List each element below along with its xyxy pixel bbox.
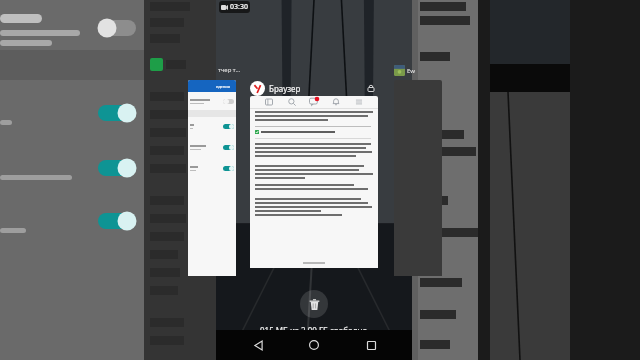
other: Yandex Browser <box>250 81 265 96</box>
staticText: едения <box>216 84 231 89</box>
button[interactable]: Lock task <box>364 81 378 95</box>
button[interactable]: Notifications <box>331 97 341 107</box>
button[interactable]: Feed <box>264 97 274 107</box>
button[interactable]: Feed <box>250 96 378 268</box>
staticText: 915 МБ из 2,00 ГБ свободно <box>260 325 368 336</box>
staticText: Ew <box>407 67 416 75</box>
button[interactable]: Menu <box>354 97 364 107</box>
button[interactable]: Back <box>243 330 273 360</box>
staticText: Браузер <box>269 83 301 94</box>
button[interactable]: Home <box>299 330 329 360</box>
staticText: тчер т… <box>218 66 241 74</box>
button[interactable]: Messages <box>309 97 319 107</box>
staticText: 03:30 <box>230 2 248 12</box>
button[interactable]: тчер т… <box>188 80 236 276</box>
button[interactable]: Clear all recent apps <box>300 290 328 318</box>
button[interactable]: Recent apps <box>356 330 386 360</box>
button[interactable]: Search <box>287 97 297 107</box>
